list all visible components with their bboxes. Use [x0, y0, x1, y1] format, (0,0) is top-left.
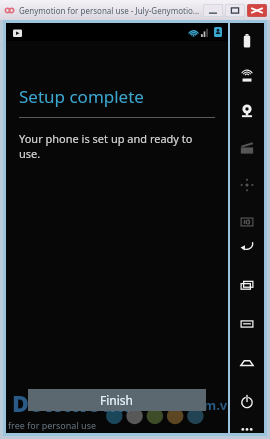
staticText: .com.v	[185, 396, 228, 414]
button[interactable]: Back	[235, 234, 259, 258]
staticText: free for personal use	[8, 419, 97, 431]
staticText: Your phone is set up and ready to use.	[19, 131, 215, 161]
staticText: Genymotion for personal use - July-Genym…	[19, 5, 200, 16]
staticText: Setup complete	[19, 85, 144, 108]
staticText: Download	[12, 387, 131, 418]
staticText: Finish	[100, 392, 134, 408]
button[interactable]: Home	[235, 351, 259, 375]
button[interactable]: Battery	[235, 29, 259, 53]
button[interactable]: Identifiers	[235, 210, 259, 234]
button[interactable]: GPS	[235, 64, 259, 88]
button[interactable]: Finish	[28, 389, 206, 411]
button[interactable]: Close	[247, 4, 267, 17]
button[interactable]: Minimize	[203, 4, 223, 17]
button[interactable]: Camera	[235, 99, 259, 123]
button[interactable]: Power	[235, 390, 259, 414]
button[interactable]: Recents	[235, 273, 259, 297]
button[interactable]: Menu	[235, 312, 259, 336]
button[interactable]: Maximize	[225, 4, 245, 17]
button[interactable]: Screen record	[235, 136, 259, 160]
button[interactable]: More options	[235, 424, 259, 433]
button[interactable]: Accelerometer	[235, 173, 259, 197]
